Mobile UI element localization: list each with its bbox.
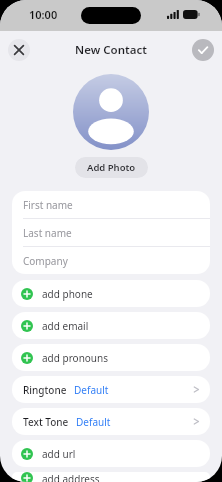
button[interactable]: add pronouns — [12, 344, 210, 371]
button[interactable]: add email — [12, 312, 210, 339]
staticText: New Contact — [75, 42, 147, 58]
button[interactable]: First name — [12, 191, 210, 218]
button[interactable]: Done — [192, 39, 214, 61]
staticText: Default — [76, 415, 111, 429]
button[interactable]: Contact photo — [73, 74, 149, 150]
button[interactable]: add phone — [12, 280, 210, 307]
button[interactable]: Company — [12, 247, 210, 274]
button[interactable]: add address — [12, 472, 210, 482]
button[interactable]: Last name — [12, 219, 210, 246]
staticText: Last name — [23, 226, 72, 240]
staticText: 10:00 — [29, 7, 58, 22]
staticText: First name — [23, 198, 73, 212]
staticText: Text Tone — [23, 415, 69, 429]
button[interactable]: Text Tone — [12, 408, 210, 435]
staticText: add email — [42, 319, 89, 333]
staticText: Company — [23, 254, 68, 268]
button[interactable]: Add Photo — [75, 157, 148, 178]
button[interactable]: Ringtone — [12, 376, 210, 403]
staticText: add address — [42, 472, 100, 482]
staticText: Ringtone — [23, 383, 67, 397]
button[interactable]: Cancel — [8, 39, 30, 61]
staticText: add url — [42, 447, 76, 461]
staticText: add pronouns — [42, 351, 109, 365]
button[interactable]: add url — [12, 440, 210, 467]
staticText: Default — [74, 383, 109, 397]
staticText: add phone — [42, 287, 93, 301]
staticText: Add Photo — [87, 161, 136, 174]
